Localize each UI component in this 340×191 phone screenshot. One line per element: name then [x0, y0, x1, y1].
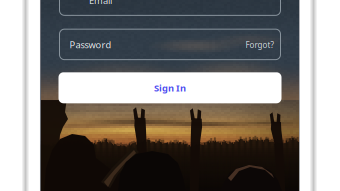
staticText: Email: [89, 0, 112, 7]
staticText: Sign In: [154, 82, 186, 94]
button[interactable]: Email: [59, 0, 280, 15]
staticText: Password: [69, 38, 111, 51]
staticText: Forgot?: [245, 39, 273, 50]
button[interactable]: Sign In: [58, 72, 281, 103]
button[interactable]: Password: [59, 29, 280, 60]
button[interactable]: Forgot?: [242, 36, 276, 54]
